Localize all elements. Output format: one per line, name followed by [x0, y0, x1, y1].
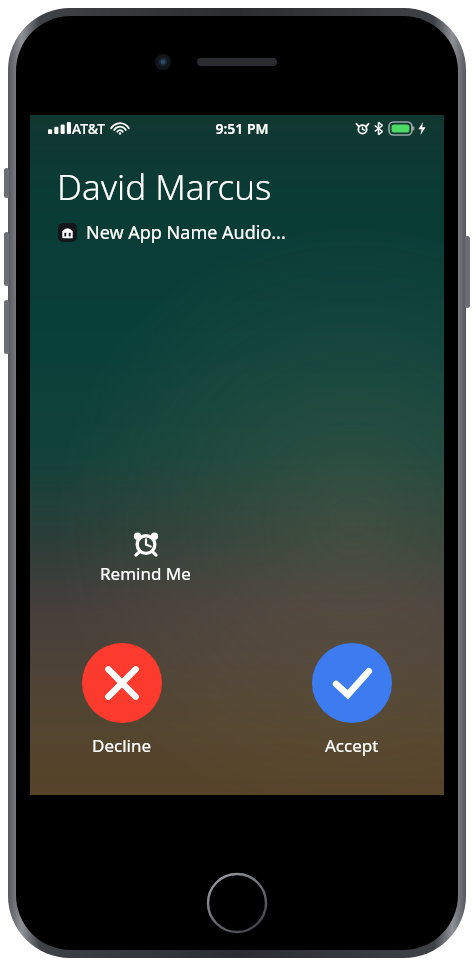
staticText: Decline [92, 734, 152, 757]
button[interactable]: Remind Me [92, 525, 199, 589]
staticText: New App Name Audio... [86, 220, 286, 245]
staticText: 9:51 PM [215, 119, 269, 138]
button[interactable]: Accept [306, 639, 398, 761]
staticText: Accept [325, 734, 379, 757]
staticText: David Marcus [57, 163, 272, 211]
button[interactable]: Decline [76, 639, 168, 761]
staticText: AT&T [72, 119, 106, 138]
staticText: Remind Me [100, 562, 191, 585]
